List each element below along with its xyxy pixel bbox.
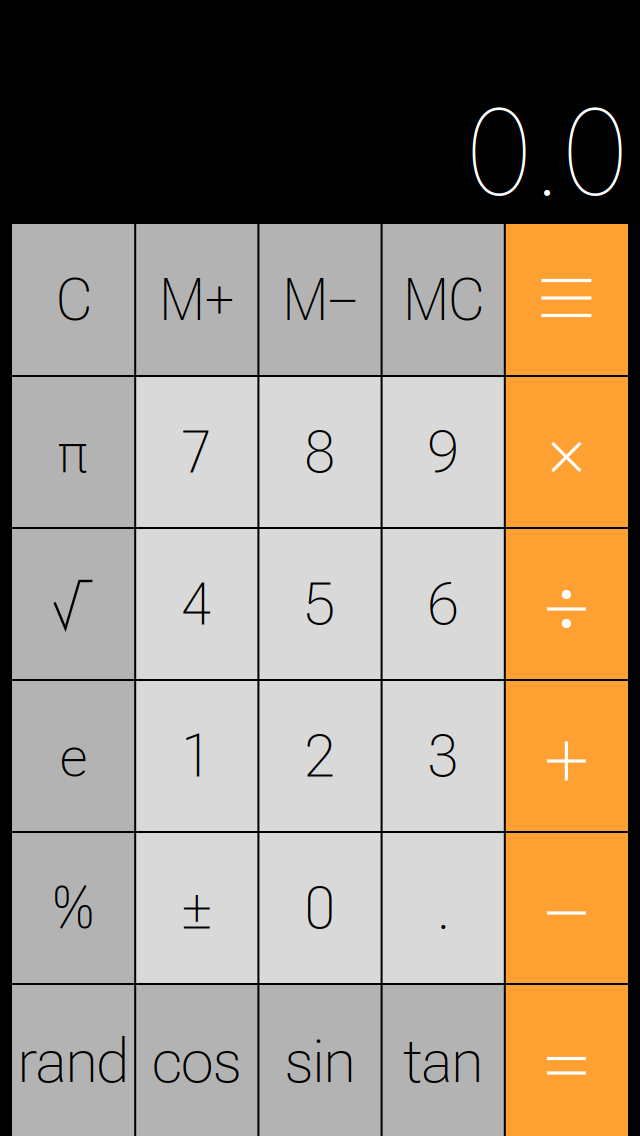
button[interactable]: .	[382, 832, 505, 984]
button[interactable]: 4	[135, 528, 258, 680]
staticText: 1	[182, 721, 212, 791]
staticText: ±	[182, 873, 212, 943]
button[interactable]: C	[12, 224, 135, 376]
staticText: %	[53, 874, 94, 942]
staticText: MC	[404, 266, 483, 334]
staticText: cos	[152, 1022, 241, 1097]
staticText: tan	[404, 1022, 483, 1097]
button[interactable]: MC	[382, 224, 505, 376]
button[interactable]: Subtract	[505, 832, 628, 984]
button[interactable]: 2	[258, 680, 382, 832]
button[interactable]: Divide	[505, 528, 628, 680]
staticText: 8	[305, 417, 335, 487]
button[interactable]: 6	[382, 528, 505, 680]
staticText: 9	[428, 417, 458, 487]
button[interactable]: M−	[258, 224, 382, 376]
staticText: 5	[305, 569, 335, 639]
staticText: 4	[182, 569, 212, 639]
button[interactable]: Menu	[505, 224, 628, 376]
staticText: 7	[182, 417, 212, 487]
staticText: C	[57, 266, 91, 334]
staticText: 0.0	[464, 80, 630, 223]
button[interactable]: 0	[258, 832, 382, 984]
button[interactable]: %	[12, 832, 135, 984]
button[interactable]: 9	[382, 376, 505, 528]
button[interactable]: Add	[505, 680, 628, 832]
button[interactable]: 3	[382, 680, 505, 832]
staticText: 2	[305, 721, 335, 791]
staticText: e	[60, 722, 87, 790]
button[interactable]: Multiply	[505, 376, 628, 528]
staticText: rand	[18, 1022, 129, 1097]
staticText: M−	[283, 266, 357, 334]
staticText: 3	[428, 721, 458, 791]
button[interactable]: e	[12, 680, 135, 832]
button[interactable]: 5	[258, 528, 382, 680]
staticText: 0	[305, 873, 335, 943]
button[interactable]: ±	[135, 832, 258, 984]
staticText: sin	[285, 1022, 355, 1097]
staticText: M+	[160, 266, 234, 334]
button[interactable]: cos	[135, 984, 258, 1136]
button[interactable]: sin	[258, 984, 382, 1136]
staticText: π	[60, 418, 88, 486]
button[interactable]: tan	[382, 984, 505, 1136]
staticText: .	[436, 873, 450, 943]
button[interactable]: π	[12, 376, 135, 528]
button[interactable]: 7	[135, 376, 258, 528]
button[interactable]: Square root	[12, 528, 135, 680]
button[interactable]: 8	[258, 376, 382, 528]
button[interactable]: 1	[135, 680, 258, 832]
button[interactable]: rand	[12, 984, 135, 1136]
button[interactable]: Equals	[505, 984, 628, 1136]
staticText: 6	[428, 569, 458, 639]
button[interactable]: M+	[135, 224, 258, 376]
